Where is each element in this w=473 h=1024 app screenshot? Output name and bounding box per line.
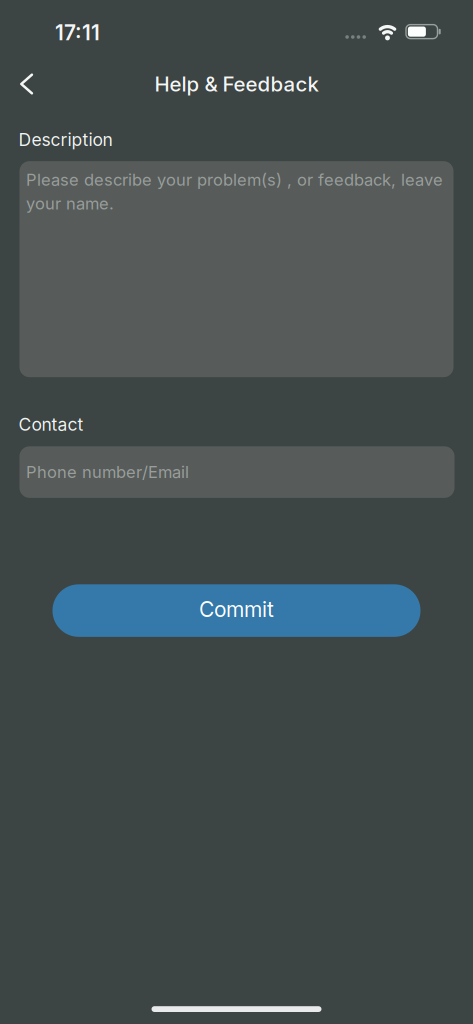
button[interactable]: Back bbox=[0, 66, 33, 105]
staticText: Help & Feedback bbox=[154, 72, 318, 96]
textField[interactable]: Please describe your problem(s) , or fee… bbox=[19, 161, 453, 377]
staticText: Description bbox=[18, 129, 112, 150]
staticText: Please describe your problem(s) , or fee… bbox=[26, 170, 443, 214]
staticText: 17:11 bbox=[55, 20, 100, 45]
staticText: Phone number/Email bbox=[26, 462, 189, 482]
textField[interactable]: Phone number/Email bbox=[19, 446, 454, 498]
staticText: Contact bbox=[18, 414, 83, 435]
button[interactable]: Commit bbox=[52, 584, 420, 637]
staticText: Commit bbox=[199, 597, 274, 622]
